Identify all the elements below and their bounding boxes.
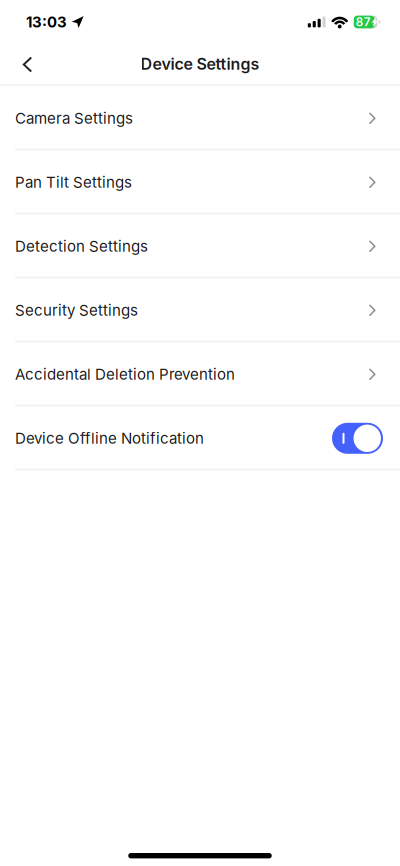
staticText: Security Settings [15,301,138,319]
button[interactable]: Back [0,44,55,84]
button[interactable]: Device Offline Notification [332,423,383,454]
button[interactable]: Detection Settings [0,214,400,278]
staticText: 13:03 [26,13,67,31]
staticText: Accidental Deletion Prevention [15,365,235,383]
staticText: Detection Settings [15,237,148,255]
staticText: 87 [356,15,371,29]
button[interactable]: Pan Tilt Settings [0,150,400,214]
button[interactable]: Camera Settings [0,86,400,150]
staticText: Device Settings [140,54,259,74]
staticText: Device Offline Notification [15,429,204,447]
staticText: Pan Tilt Settings [15,173,132,191]
button[interactable]: Accidental Deletion Prevention [0,342,400,406]
button[interactable]: Security Settings [0,278,400,342]
staticText: Camera Settings [15,109,133,127]
